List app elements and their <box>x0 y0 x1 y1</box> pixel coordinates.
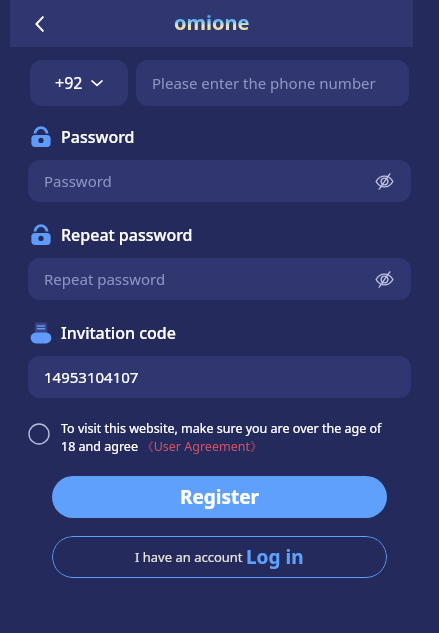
button[interactable]: Password <box>28 160 411 202</box>
staticText: Repeat password <box>61 224 193 246</box>
button[interactable]: I have an account <box>52 536 387 578</box>
button[interactable]: To visit this website, make sure you are… <box>28 420 384 455</box>
button[interactable]: Repeat password <box>28 258 411 300</box>
staticText: Register <box>180 484 260 510</box>
staticText: Invitation code <box>61 322 176 344</box>
button[interactable]: Please enter the phone number <box>136 60 409 106</box>
staticText: I have an account <box>135 548 246 566</box>
staticText: Repeat password <box>44 269 166 289</box>
button[interactable]: Show password <box>369 264 399 294</box>
button[interactable]: Register <box>52 476 387 518</box>
button[interactable]: Back <box>20 4 60 44</box>
staticText: Password <box>61 126 135 148</box>
button[interactable]: Show password <box>369 166 399 196</box>
button[interactable]: 14953104107 <box>28 356 411 398</box>
staticText: omione <box>174 9 250 36</box>
staticText: To visit this website, make sure you are… <box>61 420 384 455</box>
staticText: Log in <box>246 544 304 570</box>
staticText: 14953104107 <box>44 367 139 387</box>
staticText: Password <box>44 171 112 191</box>
staticText: Please enter the phone number <box>152 73 376 93</box>
button[interactable]: +92 <box>30 60 128 106</box>
staticText: +92 <box>55 72 83 94</box>
